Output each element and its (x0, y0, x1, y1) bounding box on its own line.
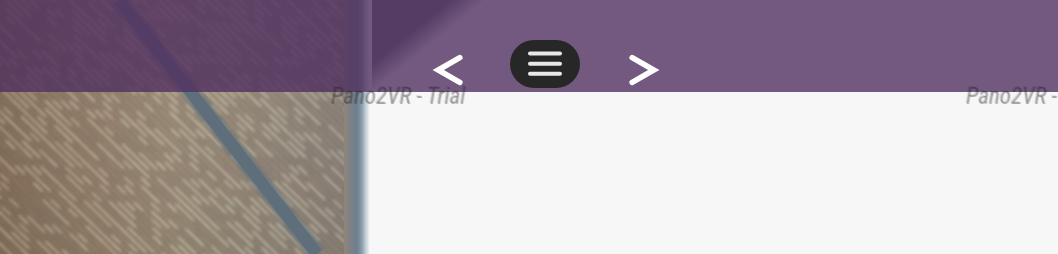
button[interactable]: Previous panorama (423, 45, 475, 95)
button[interactable]: Open menu (510, 40, 580, 88)
staticText: Pano2VR - Trial (330, 82, 465, 109)
staticText: Pano2VR - Trial (331, 83, 466, 110)
staticText: Pano2VR - Trial (967, 83, 1058, 110)
button[interactable]: Next panorama (617, 45, 669, 95)
staticText: Pano2VR - Trial (966, 83, 1058, 110)
staticText: Pano2VR - Trial (332, 83, 467, 110)
staticText: Pano2VR - Trial (965, 82, 1058, 109)
